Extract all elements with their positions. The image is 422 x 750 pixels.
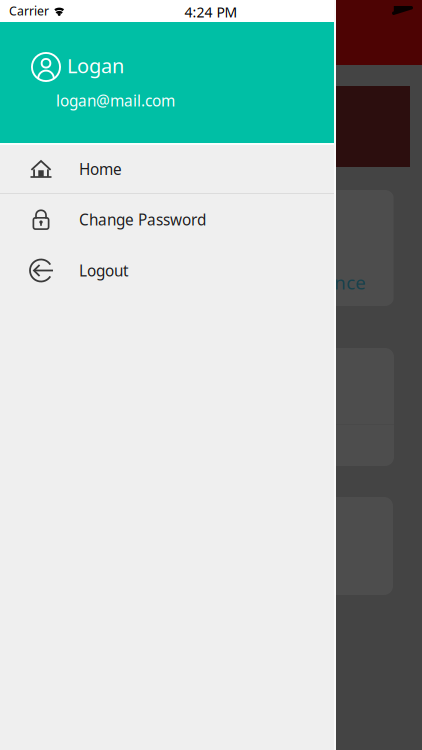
button[interactable]: Home bbox=[0, 145, 336, 193]
button[interactable]: Logout bbox=[0, 245, 336, 296]
staticText: Logan bbox=[67, 52, 124, 79]
staticText: Home bbox=[79, 159, 122, 179]
staticText: Carrier bbox=[9, 2, 49, 19]
staticText: 4:24 PM bbox=[184, 2, 237, 22]
staticText: Change Password bbox=[79, 209, 206, 230]
button[interactable]: Change Password bbox=[0, 194, 336, 245]
staticText: Logout bbox=[79, 260, 129, 281]
staticText: nce bbox=[334, 270, 366, 295]
staticText: logan@mail.com bbox=[56, 90, 175, 111]
